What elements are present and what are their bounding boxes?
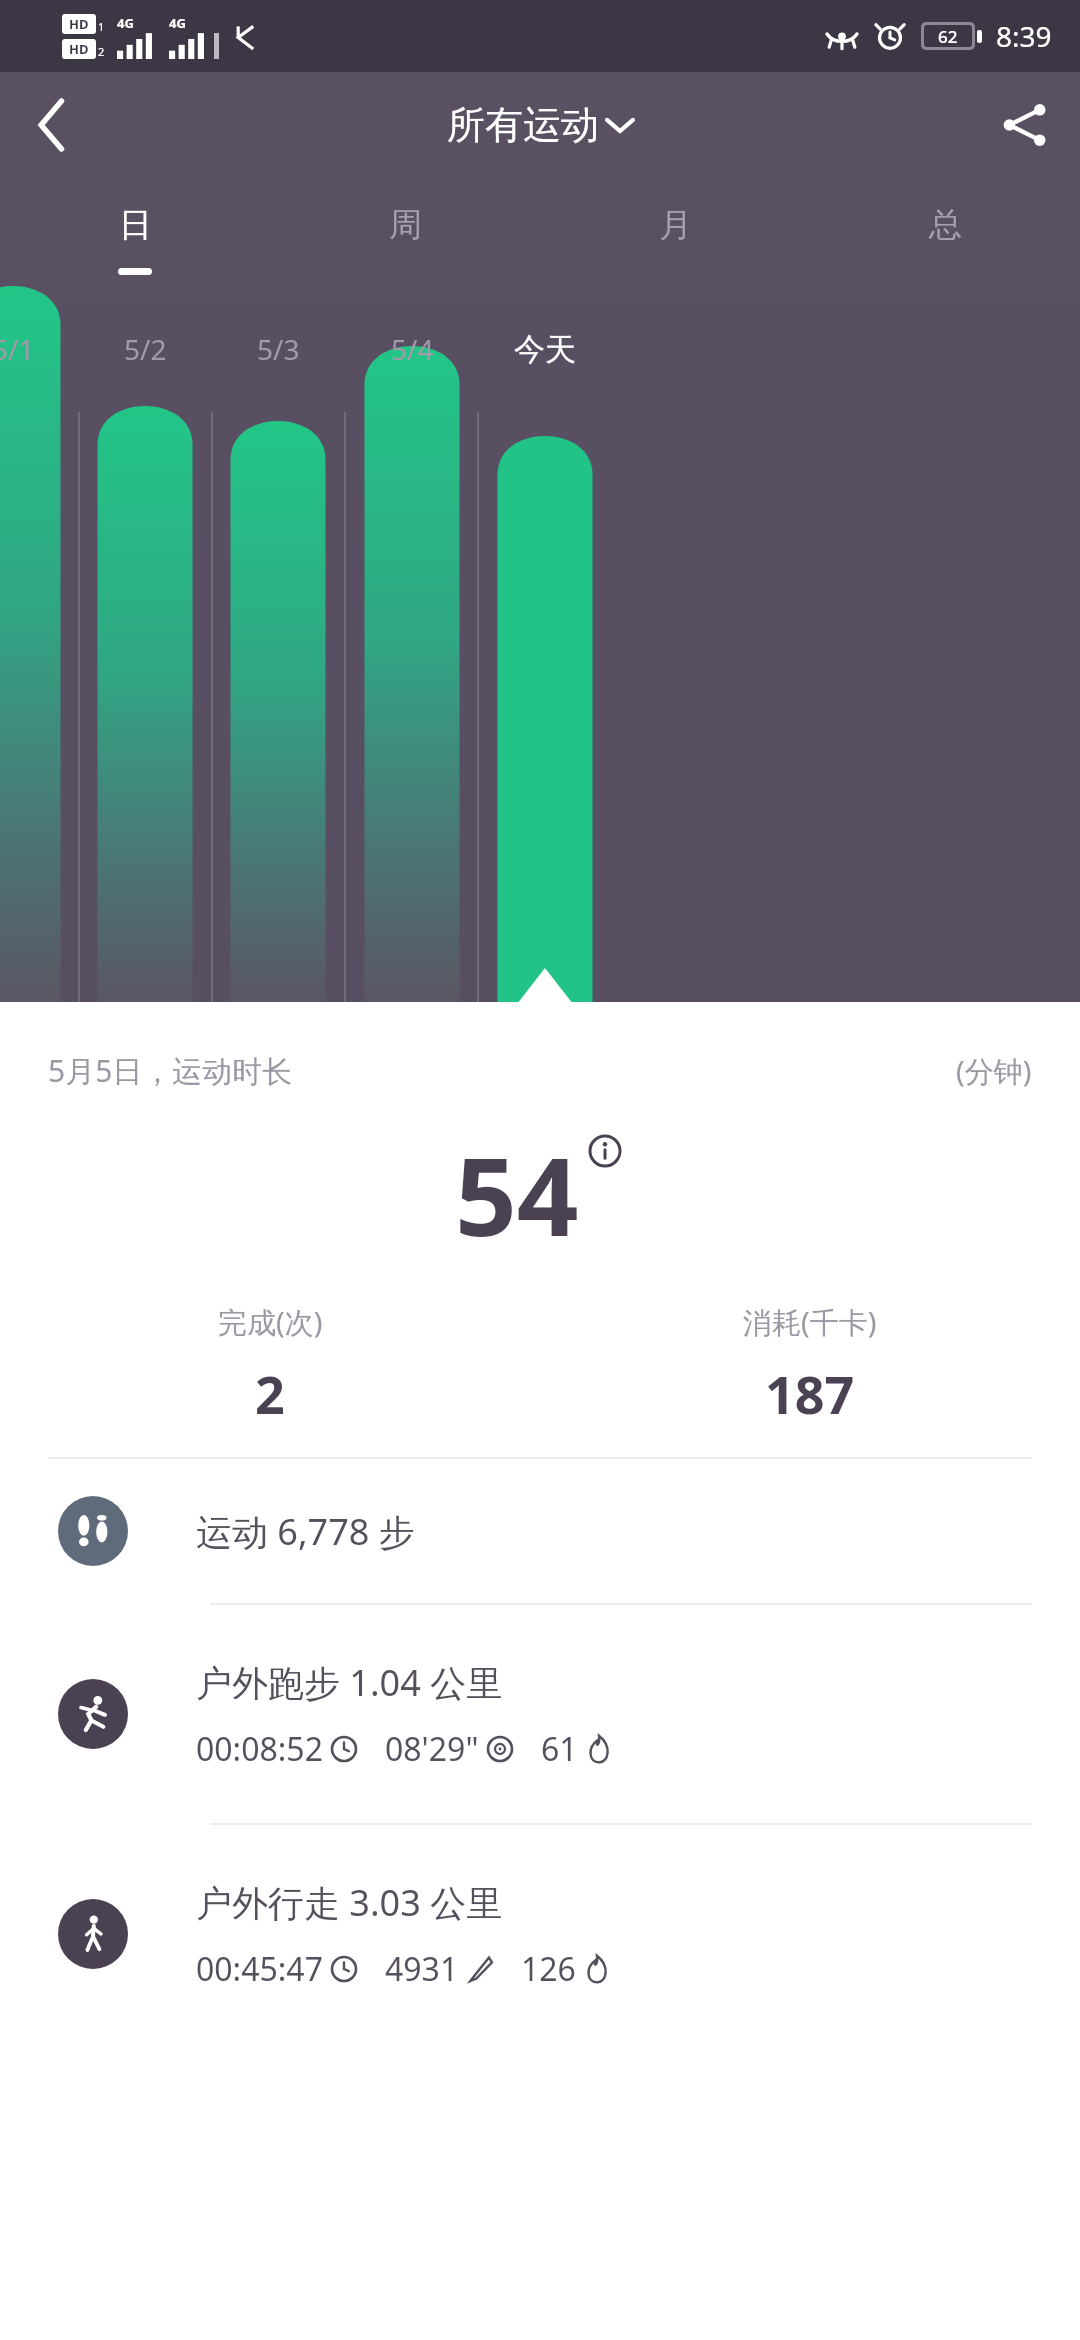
button[interactable]: 日	[0, 177, 270, 302]
staticText: 126	[521, 1947, 576, 1991]
staticText: 8:39	[996, 17, 1052, 55]
button[interactable]: 运动 6,778 步	[0, 1459, 1080, 1603]
staticText: 4G	[169, 14, 186, 32]
button[interactable]: 户外跑步 1.04 公里	[0, 1605, 1080, 1823]
staticText: 2	[98, 44, 105, 59]
staticText: 周	[389, 204, 422, 246]
staticText: HD	[69, 40, 89, 58]
staticText: 5/3	[257, 330, 300, 368]
staticText: 运动 6,778 步	[196, 1507, 415, 1556]
staticText: 日	[119, 204, 152, 246]
button[interactable]: 总	[810, 177, 1080, 302]
staticText: 消耗(千卡)	[743, 1302, 877, 1342]
staticText: (分钟)	[956, 1051, 1032, 1091]
staticText: 完成(次)	[218, 1302, 323, 1342]
button[interactable]: 所有运动	[447, 101, 633, 149]
staticText: HD	[69, 15, 89, 33]
staticText: 户外行走 3.03 公里	[196, 1878, 503, 1927]
button[interactable]: 消耗(千卡)	[540, 1302, 1080, 1429]
staticText: 54	[455, 1121, 579, 1268]
staticText: 户外跑步 1.04 公里	[196, 1658, 503, 1707]
staticText: 所有运动	[447, 101, 599, 149]
button[interactable]: Share	[970, 72, 1080, 177]
staticText: 5月5日，运动时长	[48, 1050, 293, 1091]
button[interactable]: Info	[585, 1131, 625, 1171]
staticText: 187	[765, 1358, 855, 1429]
staticText: 5/2	[124, 330, 167, 368]
staticText: 61	[541, 1727, 578, 1771]
staticText: 月	[659, 204, 692, 246]
button[interactable]: 户外行走 3.03 公里	[0, 1825, 1080, 2043]
button[interactable]: 完成(次)	[0, 1302, 540, 1429]
staticText: 62	[938, 25, 958, 47]
button[interactable]: 月	[540, 177, 810, 302]
staticText: 总	[929, 204, 962, 246]
button[interactable]: Back	[0, 73, 104, 177]
staticText: 5/4	[391, 330, 434, 368]
staticText: 今天	[514, 330, 576, 369]
button[interactable]: 周	[270, 177, 540, 302]
staticText: 4931	[385, 1947, 459, 1991]
staticText: 5/1	[0, 330, 35, 368]
staticText: 00:08:52	[196, 1727, 323, 1771]
staticText: 2	[255, 1358, 285, 1429]
staticText: 00:45:47	[196, 1947, 323, 1991]
staticText: 08'29"	[385, 1727, 479, 1771]
staticText: 4G	[117, 14, 134, 32]
staticText: 1	[98, 19, 105, 34]
